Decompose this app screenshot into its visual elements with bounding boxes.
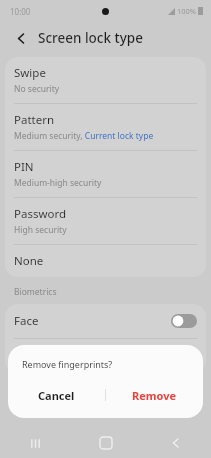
staticText: Remove [132,388,177,403]
button[interactable]: Swipe [5,57,206,103]
staticText: Medium-high security [14,177,102,189]
staticText: No security [14,83,60,95]
staticText: None [14,253,44,269]
staticText: Password [14,206,67,222]
staticText: 100% [177,6,197,16]
staticText: Swipe [14,65,46,81]
staticText: Face [14,313,171,329]
staticText: 10:00 [10,6,31,17]
button[interactable]: Back [10,27,32,49]
button[interactable]: None [5,245,206,277]
staticText: PIN [14,159,34,175]
button[interactable]: Face [5,304,206,338]
button[interactable]: Recents [0,428,71,458]
button[interactable]: Home [71,428,141,458]
button[interactable]: Cancel [8,383,105,407]
button[interactable]: Pattern [5,104,206,150]
button[interactable]: Password [5,198,206,244]
button[interactable]: PIN [5,151,206,197]
staticText: Pattern [14,112,55,128]
button[interactable]: Fingerprints [5,339,206,373]
staticText: Fingerprints [14,348,171,364]
staticText: Medium security, Current lock type [14,130,154,142]
staticText: Biometrics [14,286,57,298]
staticText: High security [14,224,67,236]
staticText: Cancel [38,388,75,403]
staticText: Remove fingerprints? [22,358,113,370]
button[interactable]: Remove [106,383,203,407]
staticText: Screen lock type [38,29,143,47]
